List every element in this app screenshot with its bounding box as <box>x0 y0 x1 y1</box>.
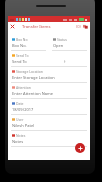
button[interactable]: Attention <box>8 83 90 99</box>
button[interactable]: Notes <box>8 131 90 147</box>
staticText: Box No <box>16 37 28 42</box>
button[interactable]: Status <box>49 35 90 51</box>
staticText: User <box>16 117 24 122</box>
staticText: Transfer Items <box>22 24 51 30</box>
button[interactable]: User <box>8 115 90 131</box>
staticText: Send To <box>16 53 29 58</box>
button[interactable]: Add item <box>75 143 85 153</box>
staticText: Attention <box>16 85 31 90</box>
staticText: 18/09/2017 <box>12 107 34 112</box>
button[interactable]: Date <box>8 99 90 115</box>
staticText: Nilesh Patel <box>12 123 35 128</box>
staticText: Enter Attention Name <box>12 91 53 96</box>
staticText: Enter Storage Location <box>12 75 55 80</box>
button[interactable]: Boxes <box>82 22 89 31</box>
button[interactable]: Storage Location <box>8 67 90 83</box>
staticText: Storage Location <box>16 69 43 74</box>
staticText: Box No. <box>12 43 27 48</box>
button[interactable]: Close <box>8 22 17 31</box>
staticText: Date <box>16 101 24 106</box>
staticText: Notes <box>16 133 26 138</box>
staticText: (0) <box>76 24 81 29</box>
staticText: Send To <box>12 59 27 64</box>
staticText: Status <box>57 37 67 42</box>
button[interactable]: Box No <box>8 35 49 51</box>
button[interactable]: Send To <box>8 51 90 67</box>
staticText: Open <box>53 43 64 48</box>
staticText: Notes <box>12 139 24 144</box>
